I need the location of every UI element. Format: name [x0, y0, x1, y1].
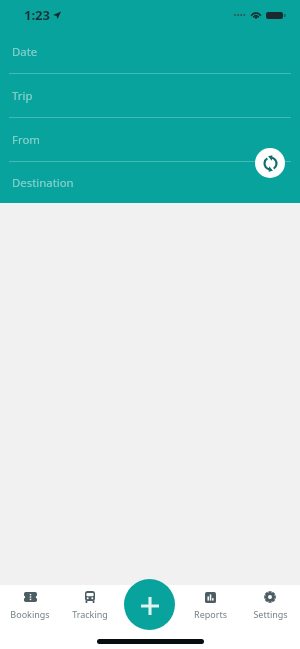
button[interactable]: Trip — [0, 74, 300, 118]
button[interactable]: Date — [0, 30, 300, 74]
staticText: Tracking — [72, 608, 108, 620]
staticText: Trip — [12, 88, 33, 104]
button[interactable]: Settings — [240, 590, 300, 626]
staticText: From — [12, 132, 40, 148]
button[interactable]: From — [0, 118, 300, 162]
button[interactable]: Tracking — [60, 590, 120, 626]
staticText: Reports — [194, 608, 227, 620]
staticText: Bookings — [10, 608, 50, 620]
button[interactable]: Reports — [180, 590, 240, 626]
button[interactable]: Add booking — [124, 579, 175, 630]
button[interactable]: Swap from and destination — [255, 148, 285, 178]
staticText: Settings — [253, 608, 288, 620]
staticText: Destination — [12, 175, 74, 191]
button[interactable]: Destination — [0, 162, 300, 203]
staticText: 1:23 — [24, 6, 50, 24]
staticText: Date — [12, 44, 38, 60]
button[interactable]: Bookings — [0, 590, 60, 626]
